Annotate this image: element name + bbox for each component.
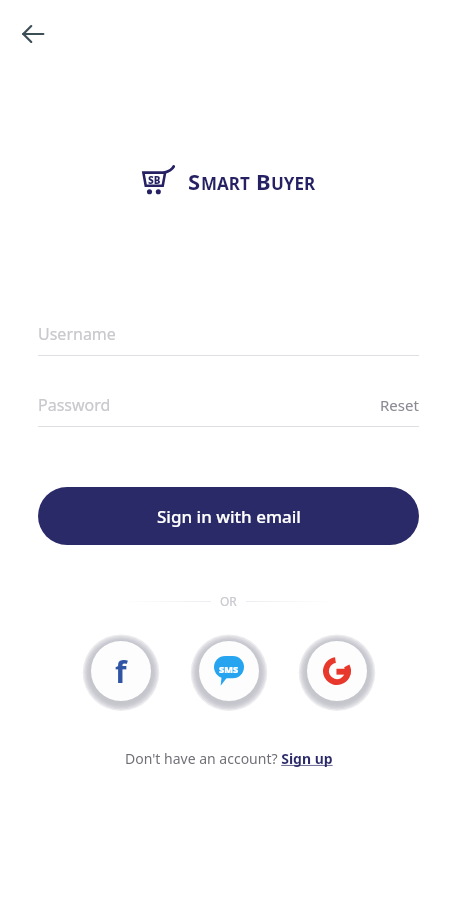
- button[interactable]: Back: [14, 15, 52, 53]
- staticText: Password: [38, 394, 111, 416]
- button[interactable]: Sign in with SMS: [199, 641, 259, 701]
- staticText: SB: [148, 173, 161, 187]
- staticText: UYER: [271, 172, 316, 195]
- button[interactable]: Sign in with Google: [307, 641, 367, 701]
- button[interactable]: Username: [38, 312, 419, 355]
- button[interactable]: Password: [38, 383, 380, 426]
- staticText: OR: [220, 593, 237, 609]
- staticText: MART: [201, 172, 250, 195]
- button[interactable]: Don't have an account? Sign up: [125, 749, 333, 768]
- staticText: Username: [38, 323, 116, 345]
- button[interactable]: Sign in with Facebook: [91, 641, 151, 701]
- staticText: Don't have an account? Sign up: [125, 749, 333, 768]
- staticText: f: [115, 651, 127, 692]
- staticText: B: [256, 166, 271, 196]
- staticText: S: [188, 166, 201, 196]
- staticText: SMS: [219, 663, 239, 675]
- button[interactable]: Reset: [380, 383, 419, 426]
- staticText: Sign in with email: [157, 505, 301, 528]
- button[interactable]: Sign in with email: [38, 487, 419, 545]
- staticText: Reset: [380, 395, 419, 415]
